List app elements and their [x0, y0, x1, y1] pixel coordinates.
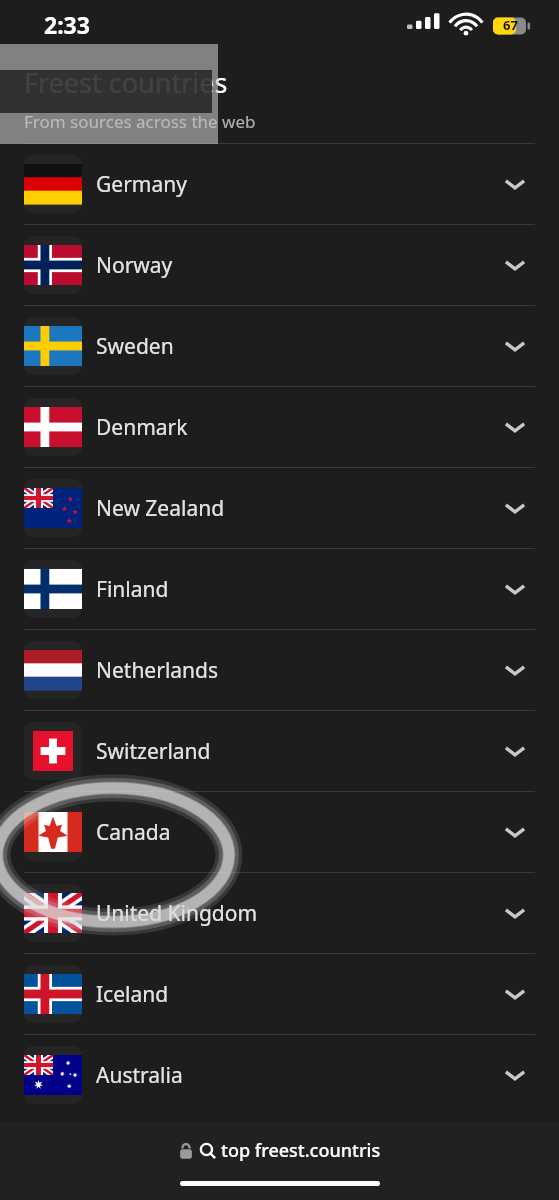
- button[interactable]: Australia: [0, 1035, 559, 1115]
- staticText: Norway: [96, 251, 173, 280]
- button[interactable]: Expand Switzerland: [495, 731, 535, 771]
- staticText: Iceland: [96, 980, 169, 1009]
- button[interactable]: Expand Netherlands: [495, 650, 535, 690]
- button[interactable]: Canada: [0, 792, 559, 872]
- button[interactable]: Sweden: [0, 306, 559, 386]
- staticText: Sweden: [96, 332, 174, 361]
- staticText: Denmark: [96, 413, 188, 442]
- button[interactable]: Expand Iceland: [495, 974, 535, 1014]
- staticText: top freest.countris: [221, 1138, 381, 1163]
- button[interactable]: Iceland: [0, 954, 559, 1034]
- staticText: Canada: [96, 818, 171, 847]
- button[interactable]: Expand Germany: [495, 164, 535, 204]
- button[interactable]: Expand New Zealand: [495, 488, 535, 528]
- button[interactable]: Expand Denmark: [495, 407, 535, 447]
- button[interactable]: Netherlands: [0, 630, 559, 710]
- button[interactable]: Expand Finland: [495, 569, 535, 609]
- button[interactable]: Expand Norway: [495, 245, 535, 285]
- button[interactable]: Norway: [0, 225, 559, 305]
- staticText: New Zealand: [96, 494, 225, 523]
- button[interactable]: Expand Australia: [495, 1055, 535, 1095]
- staticText: Australia: [96, 1061, 183, 1090]
- staticText: From sources across the web: [24, 110, 256, 133]
- button[interactable]: United Kingdom: [0, 873, 559, 953]
- staticText: Freest countries: [24, 64, 228, 101]
- staticText: 67: [503, 16, 518, 34]
- button[interactable]: New Zealand: [0, 468, 559, 548]
- staticText: Netherlands: [96, 656, 219, 685]
- button[interactable]: Expand Canada: [495, 812, 535, 852]
- button[interactable]: Expand Sweden: [495, 326, 535, 366]
- staticText: 2:33: [44, 9, 90, 40]
- button[interactable]: Denmark: [0, 387, 559, 467]
- staticText: United Kingdom: [96, 899, 258, 928]
- button[interactable]: Finland: [0, 549, 559, 629]
- button[interactable]: Germany: [0, 144, 559, 224]
- staticText: Switzerland: [96, 737, 211, 766]
- button[interactable]: Switzerland: [0, 711, 559, 791]
- staticText: Finland: [96, 575, 169, 604]
- button[interactable]: Expand United Kingdom: [495, 893, 535, 933]
- staticText: Germany: [96, 170, 187, 199]
